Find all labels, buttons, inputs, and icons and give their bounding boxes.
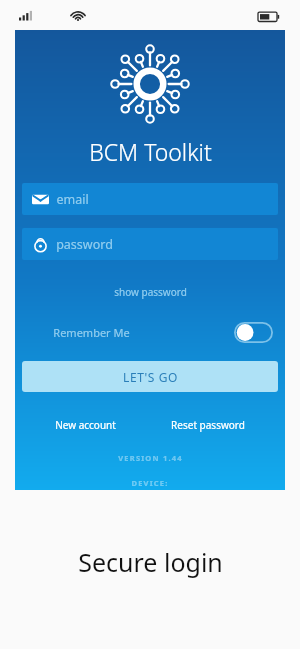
staticText: show password	[114, 285, 187, 299]
staticText: New account	[55, 418, 116, 432]
staticText: Remember Me	[53, 325, 130, 340]
other: Remember Me toggle, off	[234, 322, 273, 343]
staticText: password	[56, 236, 113, 253]
staticText: BCM Toolkit	[89, 136, 212, 167]
button[interactable]: New account	[51, 414, 120, 436]
button[interactable]: show password	[104, 281, 197, 303]
button[interactable]: Remember Me	[22, 317, 278, 347]
staticText: Reset password	[171, 418, 245, 432]
staticText: VERSION 1.44	[118, 453, 183, 463]
staticText: email	[56, 191, 89, 208]
button[interactable]: password	[22, 228, 278, 260]
staticText: DEVICE:	[131, 478, 169, 488]
button[interactable]: email	[22, 183, 278, 215]
button[interactable]: Reset password	[167, 414, 249, 436]
staticText: LET'S GO	[123, 369, 178, 385]
staticText: Secure login	[78, 545, 223, 579]
button[interactable]: LET'S GO	[22, 361, 278, 392]
